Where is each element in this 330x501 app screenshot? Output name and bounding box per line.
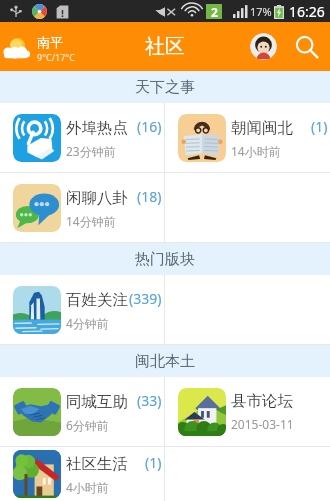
staticText: 天下之事 [135, 78, 195, 97]
button[interactable]: 朝闻闽北 [165, 103, 330, 172]
staticText: (1) [145, 453, 162, 472]
staticText: 4分钟前 [66, 315, 109, 331]
staticText: 16:26 [289, 2, 325, 21]
staticText: 外埠热点 [66, 118, 128, 138]
staticText: (339) [129, 289, 162, 308]
staticText: 闽北本土 [135, 352, 195, 371]
staticText: (1) [311, 117, 328, 136]
staticText: (18) [137, 187, 162, 206]
staticText: 社区生活 [66, 454, 128, 474]
staticText: 23分钟前 [66, 143, 116, 159]
button[interactable]: Profile [250, 33, 277, 60]
staticText: 14小时前 [231, 143, 281, 159]
staticText: 百姓关注 [66, 290, 128, 310]
staticText: 热门版块 [135, 250, 195, 269]
staticText: (16) [137, 117, 162, 136]
staticText: 6分钟前 [66, 417, 109, 433]
staticText: 14分钟前 [66, 213, 116, 229]
button[interactable]: 县市论坛 [165, 377, 330, 446]
staticText: 闲聊八卦 [66, 188, 128, 208]
staticText: 同城互助 [66, 392, 128, 412]
button[interactable]: 南平 [0, 31, 75, 63]
button[interactable]: 闲聊八卦 [0, 173, 164, 242]
staticText: 县市论坛 [231, 391, 293, 411]
button[interactable]: 社区生活 [0, 447, 164, 501]
button[interactable]: 同城互助 [0, 377, 164, 446]
staticText: 社区 [145, 34, 185, 59]
button[interactable]: 外埠热点 [0, 103, 164, 172]
staticText: 朝闻闽北 [231, 118, 293, 138]
staticText: 2015-03-11 [231, 416, 294, 432]
button[interactable]: 百姓关注 [0, 275, 164, 344]
button[interactable]: Search [294, 34, 320, 60]
staticText: (33) [137, 391, 162, 410]
staticText: 2 [211, 4, 218, 19]
staticText: 南平 [37, 34, 63, 50]
staticText: 17% [250, 4, 272, 19]
staticText: 9°C/17°C [37, 51, 75, 63]
staticText: 4小时前 [66, 479, 109, 495]
